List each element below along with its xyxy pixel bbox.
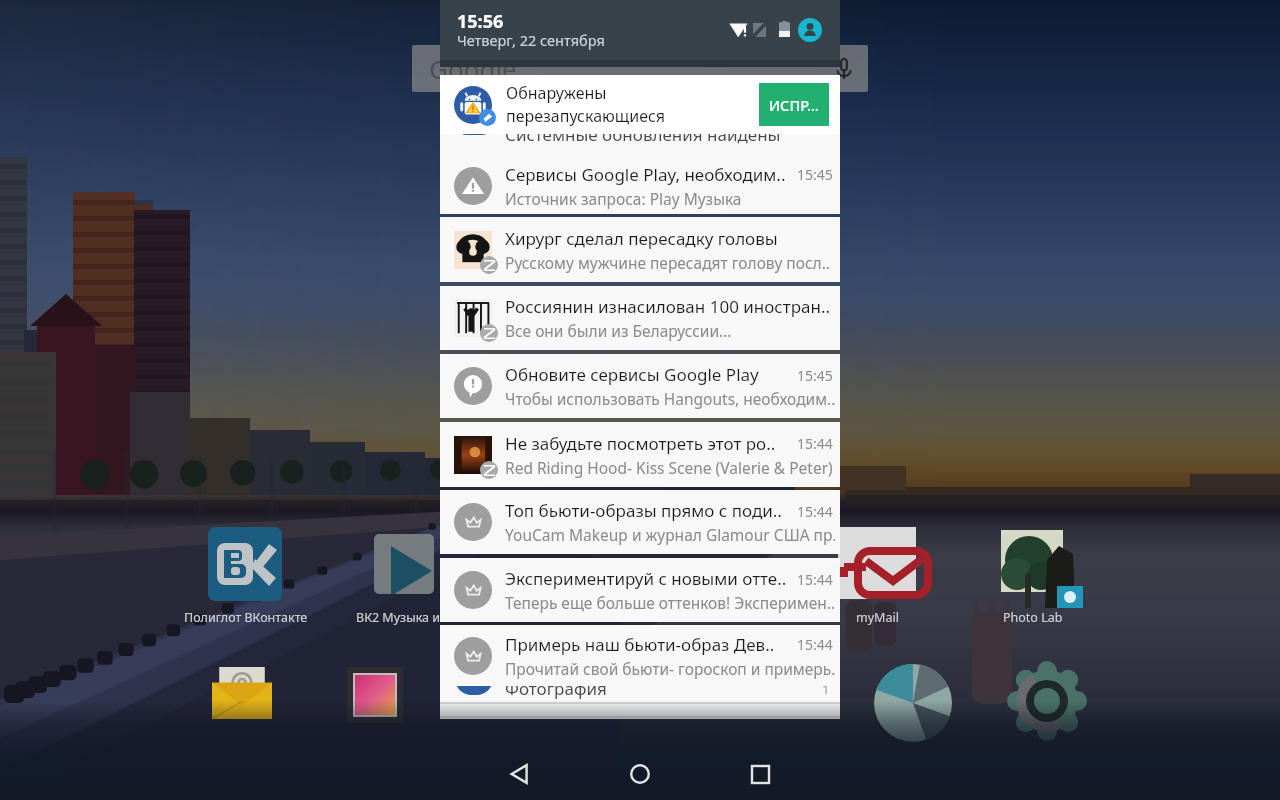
button[interactable]: Хирург сделал пересадку головы (440, 217, 840, 282)
staticText: 1 (822, 686, 830, 698)
staticText: Теперь еще больше оттенков! Эксперимен.. (505, 592, 835, 613)
button[interactable]: Топ бьюти-образы прямо с поди.. (440, 490, 840, 554)
button[interactable]: VK2 Music and Video (374, 534, 434, 594)
button[interactable]: Обнаружены (440, 75, 840, 134)
staticText: Хирург сделал пересадку головы (505, 227, 778, 250)
staticText: 15:45 (797, 366, 833, 385)
staticText: ИСПР… (769, 95, 819, 115)
button[interactable]: Back (490, 748, 550, 800)
button[interactable]: Recent apps (730, 748, 790, 800)
button[interactable]: Mail (212, 667, 272, 719)
button[interactable]: Settings (1008, 662, 1070, 724)
button[interactable]: Россиянин изнасилован 100 иностран.. (440, 286, 840, 350)
staticText: 15:56 (457, 9, 504, 34)
button[interactable]: Photo Lab (1001, 530, 1063, 592)
staticText: 15:45 (797, 165, 833, 184)
staticText: Не забудьте посмотреть этот ро.. (505, 432, 776, 455)
staticText: Обнаружены (506, 82, 607, 104)
staticText: перезапускающиеся (506, 105, 665, 127)
staticText: Прочитай свой бьюти- гороскоп и примерь.… (505, 658, 835, 679)
staticText: Экспериментируй с новыми отте.. (505, 567, 787, 590)
staticText: Обновите сервисы Google Play (505, 363, 759, 386)
staticText: myMail (856, 609, 899, 626)
staticText: Red Riding Hood- Kiss Scene (Valerie & P… (505, 457, 833, 478)
staticText: 15:44 (797, 502, 833, 521)
staticText: Все они были из Беларуссии... (505, 320, 732, 341)
button[interactable]: Photo editor (347, 667, 403, 723)
button[interactable]: Home (610, 748, 670, 800)
staticText: ВК2 Музыка и В (356, 609, 452, 626)
staticText: 15:44 (797, 635, 833, 654)
staticText: 15:44 (797, 570, 833, 589)
staticText: Фотография (505, 686, 607, 700)
staticText: YouCam Makeup и журнал Glamour США пр.. (505, 524, 835, 545)
button[interactable]: Google search (412, 45, 868, 92)
staticText: Photo Lab (1003, 609, 1063, 626)
staticText: Системные обновления найдены (505, 134, 781, 146)
button[interactable]: User profile (798, 18, 822, 42)
button[interactable]: Системные обновления найдены (440, 134, 840, 157)
staticText: Сервисы Google Play, необходим.. (505, 163, 786, 186)
staticText: Источник запроса: Play Музыка (505, 188, 742, 209)
button[interactable]: ИСПР… (759, 83, 829, 126)
staticText: Четверг, 22 сентября (457, 30, 605, 50)
button[interactable]: Обновите сервисы Google Play (440, 354, 840, 418)
staticText: Google (429, 51, 517, 86)
button[interactable]: Экспериментируй с новыми отте.. (440, 558, 840, 622)
staticText: Примерь наш бьюти-образ Дев.. (505, 633, 775, 656)
staticText: 15:44 (797, 434, 833, 453)
button[interactable]: Poliglot VKontakte (208, 527, 282, 601)
button[interactable]: myMail (838, 527, 916, 599)
staticText: Россиянин изнасилован 100 иностран.. (505, 295, 830, 318)
button[interactable]: Snapseed (874, 664, 936, 726)
button[interactable]: Не забудьте посмотреть этот ро.. (440, 422, 840, 487)
staticText: Топ бьюти-образы прямо с поди.. (505, 499, 782, 522)
button[interactable]: Сервисы Google Play, необходим.. (440, 157, 840, 214)
staticText: Полиглот ВКонтакте (184, 609, 308, 626)
staticText: Чтобы использовать Hangouts, необходим.. (505, 388, 835, 409)
staticText: Русскому мужчине пересадят голову посл.. (505, 252, 831, 273)
button[interactable]: Примерь наш бьюти-образ Дев.. (440, 625, 840, 719)
